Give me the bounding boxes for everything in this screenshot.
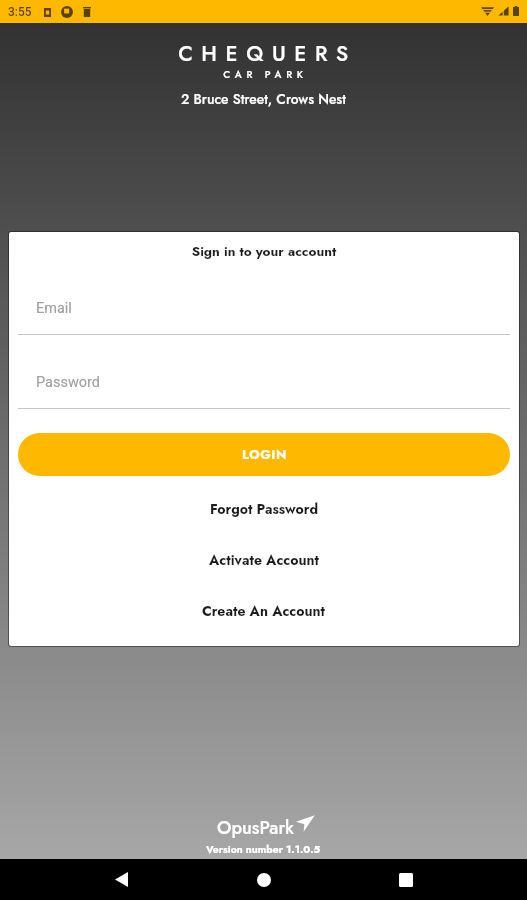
staticText: Version number 1.1.0.5	[206, 842, 321, 857]
button[interactable]: Password	[18, 374, 510, 409]
staticText: Sign in to your account	[9, 242, 519, 262]
button[interactable]: Activate Account	[9, 534, 519, 585]
staticText: LOGIN	[242, 445, 287, 464]
button[interactable]: Create An Account	[9, 585, 519, 636]
staticText: CAR PARK	[2, 67, 527, 81]
button[interactable]: Recent apps	[385, 859, 427, 900]
staticText: Email	[36, 300, 72, 317]
button[interactable]: Home	[243, 859, 285, 900]
staticText: CHEQUERS	[4, 39, 527, 69]
button[interactable]: Back	[100, 859, 142, 900]
button[interactable]: Forgot Password	[9, 483, 519, 534]
staticText: OpusPark	[217, 815, 294, 841]
staticText: 3:55	[8, 5, 32, 19]
staticText: Activate Account	[209, 550, 320, 570]
button[interactable]: LOGIN	[18, 433, 510, 476]
staticText: Forgot Password	[210, 499, 319, 519]
staticText: 2 Bruce Street, Crows Nest	[0, 89, 527, 109]
button[interactable]: Email	[18, 300, 510, 335]
staticText: Create An Account	[202, 601, 326, 621]
staticText: Password	[36, 374, 101, 391]
